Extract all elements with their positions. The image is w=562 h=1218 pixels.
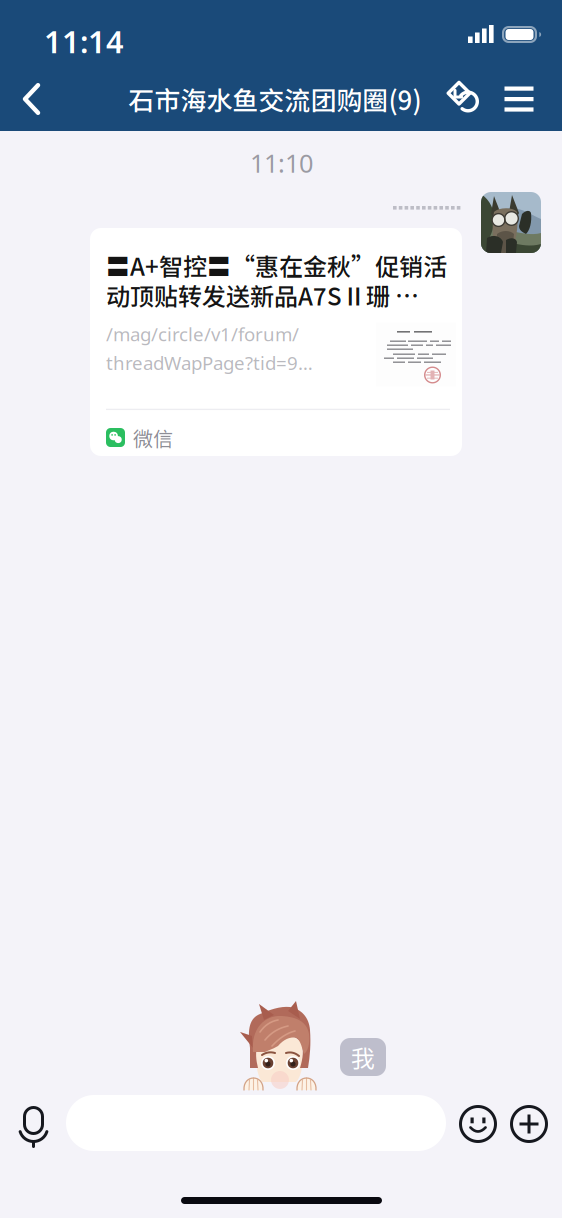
staticText: 11:14 bbox=[44, 21, 124, 62]
button[interactable]: Menu bbox=[493, 71, 545, 127]
button[interactable]: 〓A+智控〓“惠在金秋”促销活 bbox=[90, 228, 462, 456]
button[interactable]: More bbox=[503, 1098, 555, 1150]
button[interactable]: Share link bbox=[437, 71, 493, 127]
staticText: 动顶贴转发送新品A7SⅡ珊 … bbox=[106, 278, 419, 313]
staticText: 我 bbox=[351, 1040, 375, 1074]
staticText: 11:10 bbox=[250, 146, 313, 180]
button[interactable]: Back bbox=[4, 71, 60, 127]
button[interactable]: Emoji bbox=[452, 1098, 504, 1150]
button[interactable]: 我 bbox=[340, 1038, 386, 1076]
staticText: 石市海水鱼交流团购圈(9) bbox=[128, 80, 421, 118]
staticText: 微信 bbox=[133, 423, 173, 452]
staticText: /mag/circle/v1/forum/ bbox=[106, 321, 299, 346]
staticText: 〓A+智控〓“惠在金秋”促销活 bbox=[106, 248, 447, 283]
staticText: threadWapPage?tid=9… bbox=[106, 350, 313, 375]
button[interactable]: Voice message bbox=[4, 1097, 64, 1157]
